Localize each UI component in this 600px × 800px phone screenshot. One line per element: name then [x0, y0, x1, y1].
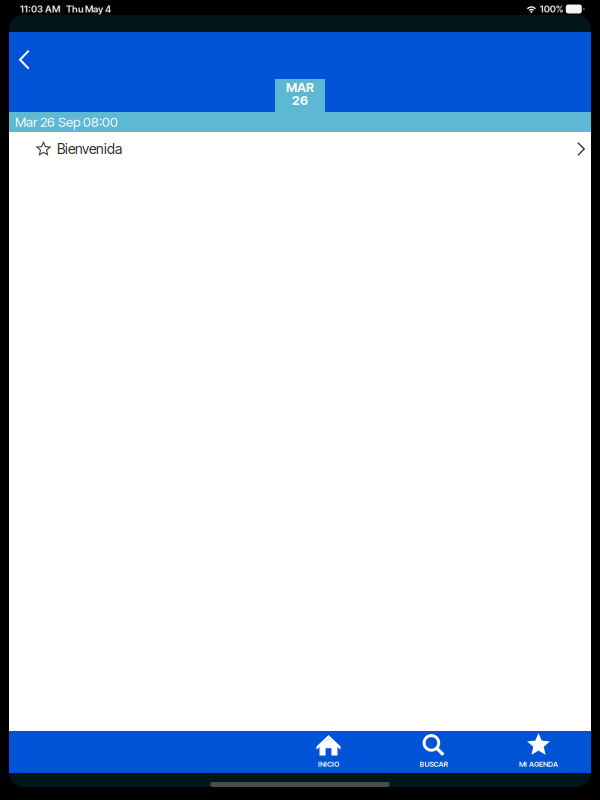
- button[interactable]: MI AGENDA: [486, 731, 591, 773]
- button[interactable]: BUSCAR: [381, 731, 486, 773]
- staticText: Bienvenida: [57, 140, 122, 157]
- staticText: BUSCAR: [419, 760, 447, 768]
- button[interactable]: INICIO: [276, 731, 381, 773]
- staticText: MAR: [286, 80, 314, 95]
- staticText: INICIO: [318, 760, 339, 768]
- staticText: 11:03 AM: [20, 3, 60, 15]
- button[interactable]: MAR: [275, 79, 325, 112]
- button[interactable]: Bienvenida: [9, 132, 591, 166]
- staticText: Mar 26 Sep 08:00: [15, 114, 118, 130]
- staticText: 26: [292, 93, 308, 108]
- staticText: MI AGENDA: [519, 760, 558, 768]
- staticText: 100%: [540, 3, 564, 15]
- staticText: Thu May 4: [66, 3, 111, 15]
- button[interactable]: Back: [9, 38, 40, 82]
